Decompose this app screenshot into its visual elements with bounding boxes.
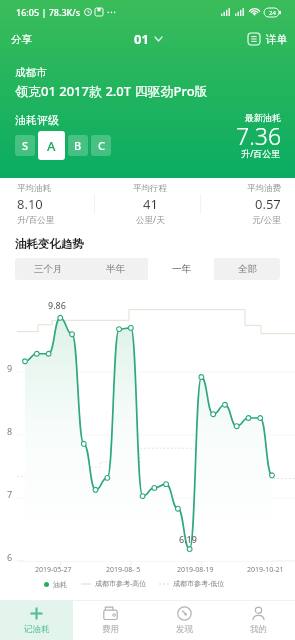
staticText: 2019-10-21	[247, 565, 284, 575]
staticText: 油耗变化趋势	[15, 237, 84, 251]
staticText: 成都市参考-高位	[95, 579, 147, 589]
staticText: S	[22, 138, 29, 153]
staticText: 成都市参考-低位	[173, 579, 225, 589]
button[interactable]: 记油耗	[0, 601, 73, 640]
staticText: 公里/天	[136, 214, 165, 225]
staticText: 2019-05-27	[35, 565, 72, 575]
staticText: 油耗	[53, 580, 67, 589]
staticText: 领克01 2017款 2.0T 四驱劲Pro版	[15, 82, 208, 100]
staticText: 平均行程	[133, 183, 167, 194]
staticText: 24	[269, 9, 276, 17]
staticText: 平均油耗	[17, 183, 51, 194]
staticText: 9.86	[48, 299, 66, 311]
staticText: 升/百公里	[241, 147, 281, 159]
staticText: 41	[143, 195, 158, 213]
staticText: A	[47, 137, 56, 155]
staticText: 我的	[250, 624, 267, 635]
button[interactable]: 我的	[221, 601, 295, 640]
button[interactable]: A	[38, 131, 65, 160]
staticText: 一年	[172, 263, 191, 275]
staticText: 9	[7, 362, 13, 374]
staticText: 8.10	[17, 195, 43, 213]
button[interactable]: 全部	[214, 258, 280, 280]
staticText: 7	[7, 488, 13, 500]
button[interactable]: 发现	[147, 601, 221, 640]
button[interactable]: 平均行程	[99, 183, 197, 225]
staticText: 最新油耗	[245, 112, 281, 123]
staticText: 费用	[102, 624, 119, 635]
staticText: 元/公里	[252, 214, 281, 225]
staticText: 01	[134, 30, 149, 48]
button[interactable]: S	[15, 135, 35, 156]
staticText: 8	[7, 425, 13, 437]
staticText: 详单	[266, 33, 287, 46]
staticText: 三个月	[34, 263, 63, 275]
button[interactable]: C	[91, 135, 111, 156]
staticText: C	[98, 138, 105, 153]
staticText: 6.19	[179, 533, 197, 545]
staticText: 0.57	[255, 195, 281, 213]
button[interactable]: B	[68, 135, 88, 156]
staticText: 16:05 | 78.3K/s	[16, 6, 81, 18]
button[interactable]: 三个月	[15, 258, 82, 280]
button[interactable]: 详单	[248, 26, 287, 52]
staticText: 半年	[106, 263, 125, 275]
button[interactable]: 分享	[11, 26, 32, 52]
staticText: 6	[7, 551, 13, 563]
staticText: 2019-08-19	[177, 565, 214, 575]
button[interactable]: 一年	[148, 258, 214, 280]
staticText: 2019-08- 5	[106, 565, 141, 575]
staticText: B	[74, 138, 82, 153]
staticText: 成都市	[15, 66, 47, 79]
staticText: 记油耗	[24, 624, 50, 635]
staticText: 油耗评级	[15, 113, 59, 127]
staticText: 7.36	[236, 120, 282, 151]
button[interactable]: 平均油耗	[0, 183, 99, 225]
button[interactable]: 费用	[73, 601, 147, 640]
staticText: 平均油费	[247, 183, 281, 194]
staticText: 分享	[11, 33, 32, 46]
button[interactable]: 01	[134, 26, 162, 52]
staticText: 升/百公里	[17, 214, 55, 225]
staticText: 全部	[238, 263, 257, 275]
button[interactable]: 平均油费	[197, 183, 295, 225]
button[interactable]: 半年	[82, 258, 148, 280]
staticText: 发现	[176, 624, 193, 635]
